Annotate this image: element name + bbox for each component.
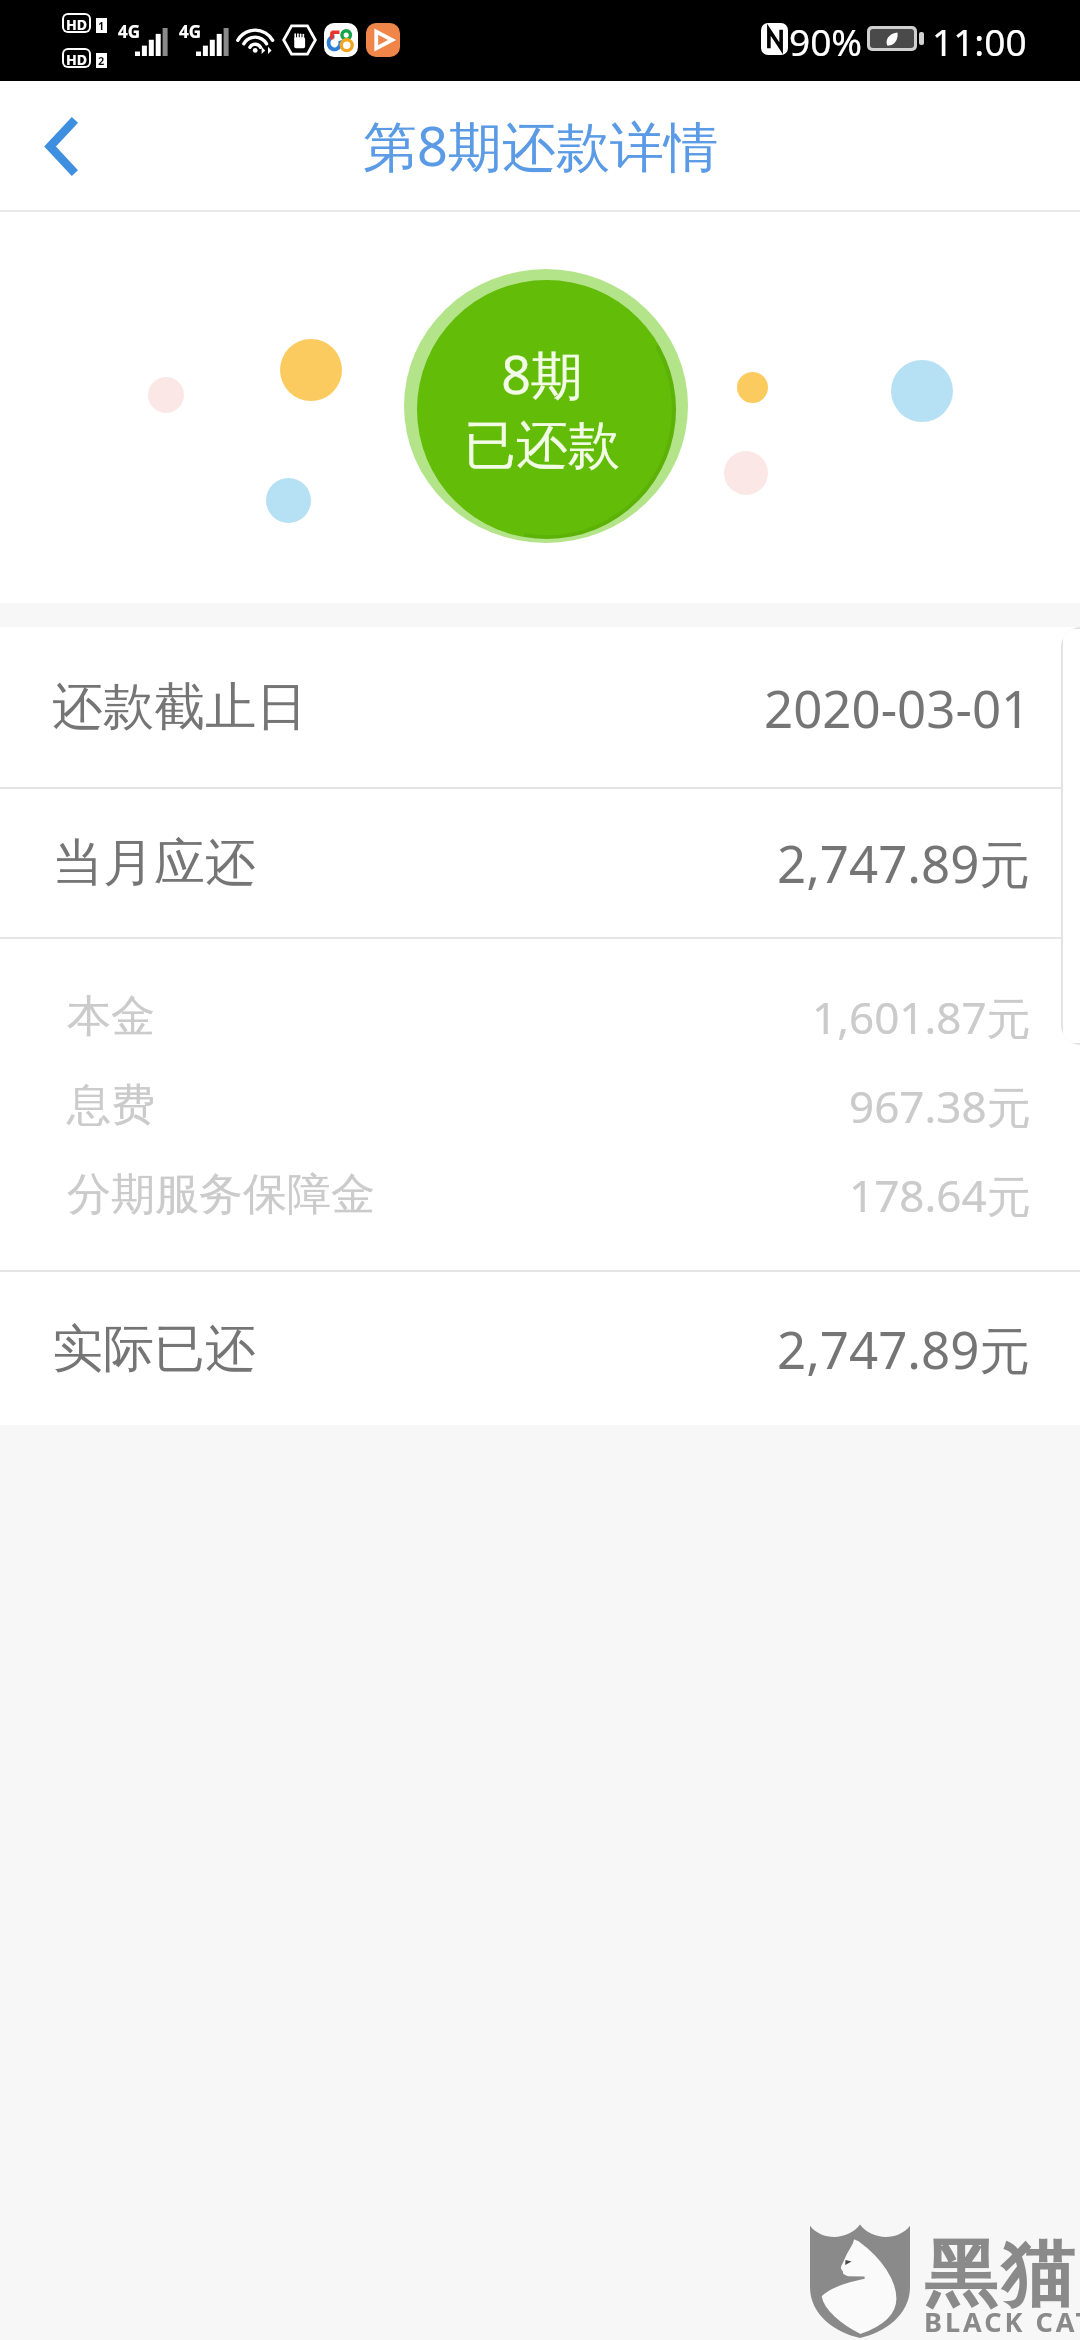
staticText: 本金: [67, 989, 155, 1044]
staticText: 第8期还款详情: [363, 108, 718, 182]
staticText: 当月应还: [52, 831, 256, 895]
staticText: 还款截止日: [52, 675, 307, 739]
staticText: 2,747.89元: [777, 1314, 1031, 1384]
staticText: 11:00: [932, 16, 1027, 66]
staticText: 黑猫: [922, 2229, 1076, 2321]
button[interactable]: 当月应还: [0, 789, 1080, 937]
button[interactable]: Back: [0, 81, 124, 210]
staticText: 2: [98, 53, 105, 68]
staticText: 4G: [118, 20, 141, 43]
button[interactable]: 实际已还: [0, 1272, 1080, 1425]
staticText: 2,747.89元: [777, 828, 1031, 898]
staticText: 1: [98, 18, 105, 33]
staticText: 178.64元: [849, 1165, 1031, 1225]
staticText: HD: [66, 15, 87, 31]
staticText: 90%: [789, 16, 863, 66]
button[interactable]: 还款截止日: [0, 627, 1080, 787]
staticText: 息费: [67, 1078, 155, 1133]
staticText: 967.38元: [849, 1076, 1031, 1136]
staticText: 1,601.87元: [812, 987, 1031, 1047]
staticText: BLACK CAT: [924, 2303, 1080, 2340]
staticText: 实际已还: [52, 1317, 256, 1381]
staticText: 2020-03-01: [764, 673, 1031, 742]
staticText: 已还款: [464, 413, 620, 479]
staticText: 4G: [179, 20, 202, 43]
staticText: 分期服务保障金: [67, 1167, 375, 1222]
staticText: 8期: [501, 338, 583, 409]
staticText: HD: [66, 50, 87, 66]
